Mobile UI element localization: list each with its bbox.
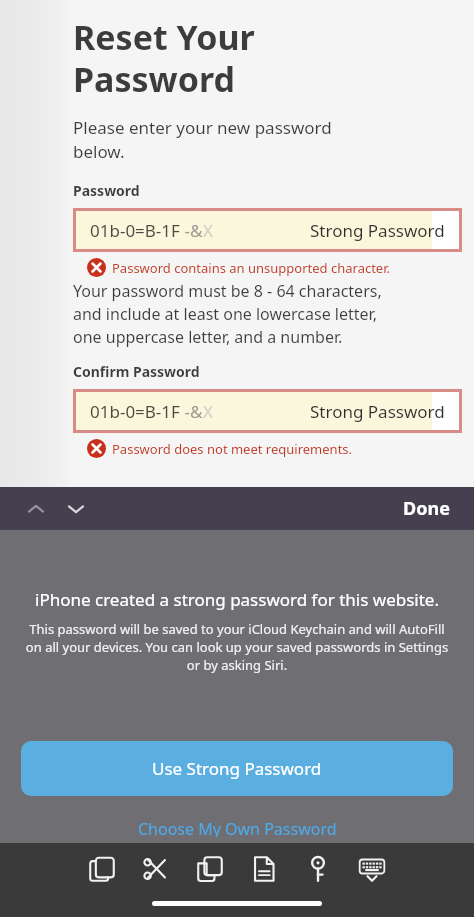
staticText: X — [203, 400, 213, 423]
staticText: 01b-0=B-1F — [90, 400, 180, 423]
button[interactable]: Cut — [138, 851, 174, 887]
button[interactable]: Done — [389, 487, 464, 530]
staticText: Strong Password — [310, 219, 445, 242]
staticText: Password — [73, 181, 140, 200]
button[interactable]: Document — [246, 851, 282, 887]
button[interactable]: 01b-0=B-1F — [76, 392, 459, 430]
staticText: Your password must be 8 - 64 characters,… — [73, 280, 382, 348]
staticText: Confirm Password — [73, 362, 200, 381]
button[interactable]: Previous field — [16, 489, 56, 529]
staticText: -& — [180, 219, 203, 242]
button[interactable]: Hide keyboard — [354, 851, 390, 887]
staticText: Password contains an unsupported charact… — [112, 259, 390, 277]
staticText: Done — [403, 496, 450, 521]
staticText: Choose My Own Password — [138, 818, 337, 837]
staticText: Please enter your new password below. — [73, 116, 332, 163]
button[interactable]: Paste — [192, 851, 228, 887]
button[interactable]: Use Strong Password — [21, 741, 453, 796]
staticText: 01b-0=B-1F — [90, 219, 180, 242]
staticText: Password does not meet requirements. — [112, 440, 353, 458]
staticText: iPhone created a strong password for thi… — [8, 588, 466, 611]
button[interactable]: 01b-0=B-1F — [76, 211, 459, 249]
staticText: X — [203, 219, 213, 242]
button[interactable]: Choose My Own Password — [124, 812, 351, 843]
staticText: This password will be saved to your iClo… — [20, 620, 454, 674]
staticText: -& — [180, 400, 203, 423]
button[interactable]: Copy — [84, 851, 120, 887]
button[interactable]: Passwords — [300, 851, 336, 887]
staticText: Strong Password — [310, 400, 445, 423]
staticText: Reset Your Password — [73, 14, 255, 102]
button[interactable]: Next field — [56, 489, 96, 529]
staticText: Use Strong Password — [152, 757, 322, 780]
